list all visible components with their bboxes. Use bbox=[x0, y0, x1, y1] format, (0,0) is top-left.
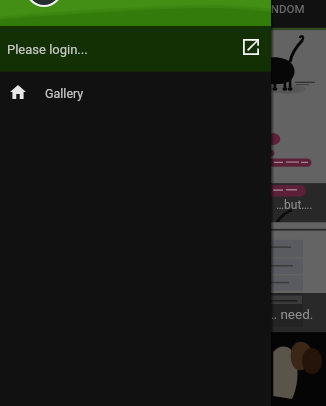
staticText: Please login... bbox=[7, 42, 88, 57]
button[interactable]: Close navigation drawer bbox=[271, 0, 326, 406]
staticText: …but…. bbox=[276, 198, 313, 212]
button[interactable]: Please login... bbox=[0, 26, 271, 72]
staticText: RANDOM bbox=[256, 2, 305, 15]
staticText: … need. bbox=[268, 306, 314, 322]
button[interactable]: Gallery bbox=[0, 76, 271, 110]
other: Open in new window bbox=[243, 39, 259, 55]
staticText: Gallery bbox=[45, 86, 84, 101]
